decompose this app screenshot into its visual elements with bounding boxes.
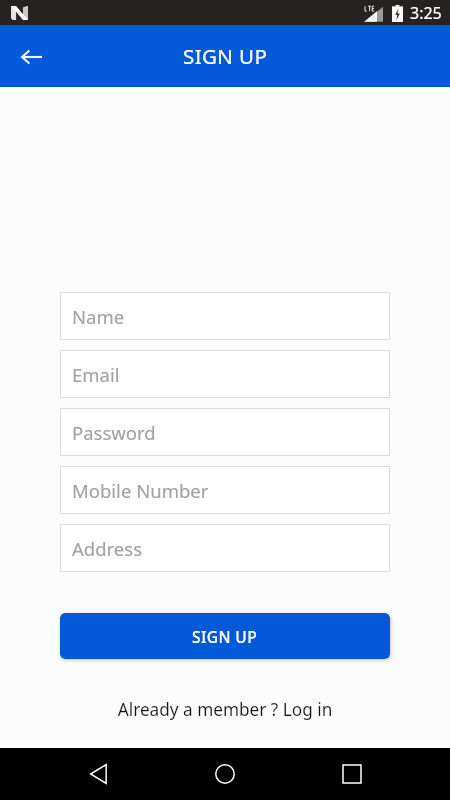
- button[interactable]: Name: [60, 292, 390, 340]
- button[interactable]: Home: [199, 748, 251, 800]
- staticText: Password: [72, 420, 156, 445]
- staticText: Mobile Number: [72, 478, 209, 503]
- staticText: SIGN UP: [192, 626, 258, 647]
- button[interactable]: Email: [60, 350, 390, 398]
- button[interactable]: Address: [60, 524, 390, 572]
- button[interactable]: Mobile Number: [60, 466, 390, 514]
- staticText: Already a member ? Log in: [0, 698, 450, 721]
- staticText: Name: [72, 304, 125, 329]
- button[interactable]: Back: [72, 748, 124, 800]
- staticText: 3:25: [410, 2, 442, 24]
- button[interactable]: Back: [8, 33, 54, 79]
- button[interactable]: Password: [60, 408, 390, 456]
- staticText: Email: [72, 362, 120, 387]
- button[interactable]: Recents: [326, 748, 378, 800]
- staticText: SIGN UP: [183, 42, 268, 70]
- button[interactable]: SIGN UP: [60, 613, 390, 659]
- staticText: Address: [72, 536, 143, 561]
